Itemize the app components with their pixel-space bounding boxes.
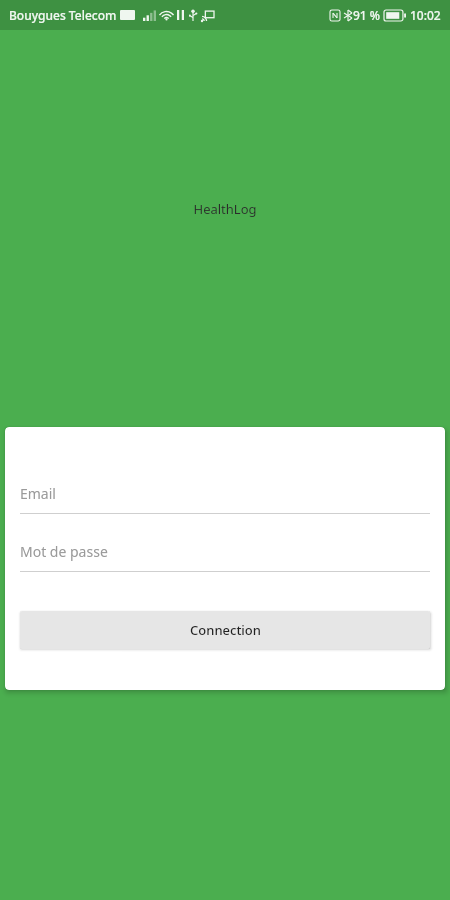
staticText: Connection bbox=[190, 621, 261, 639]
staticText: Bouygues Telecom bbox=[9, 7, 117, 23]
button[interactable]: Mot de passe bbox=[20, 542, 430, 572]
staticText: Mot de passe bbox=[20, 542, 108, 561]
button[interactable]: Connection bbox=[20, 611, 430, 649]
staticText: 91 % bbox=[353, 7, 381, 23]
staticText: HealthLog bbox=[193, 200, 257, 218]
staticText: 10:02 bbox=[410, 7, 441, 23]
button[interactable]: Email bbox=[20, 484, 430, 514]
staticText: Email bbox=[20, 484, 56, 503]
